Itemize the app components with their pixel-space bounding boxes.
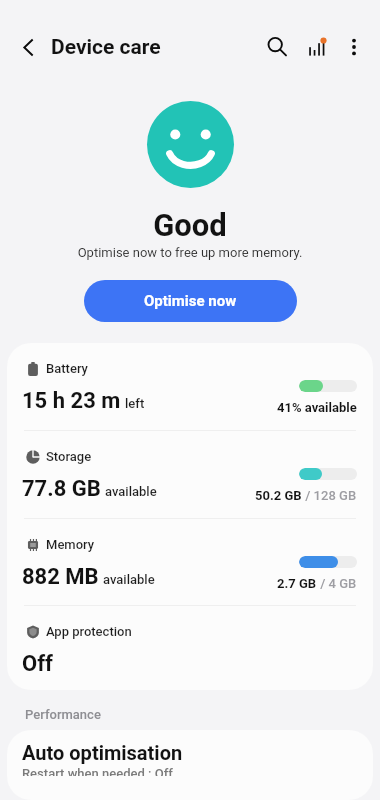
staticText: Battery	[46, 361, 88, 376]
button[interactable]: Storage	[7, 431, 373, 519]
staticText: / 128 GB	[302, 488, 357, 503]
staticText: Device care	[51, 35, 161, 60]
staticText: Auto optimisation	[22, 741, 183, 764]
staticText: Good	[0, 207, 380, 243]
button[interactable]: Search	[261, 31, 293, 63]
button[interactable]: Optimise now	[84, 280, 297, 322]
staticText: Restart when needed : Off	[22, 766, 173, 776]
staticText: Memory	[46, 537, 95, 552]
button[interactable]: Auto optimisation	[7, 730, 373, 800]
staticText: App protection	[46, 624, 132, 639]
button[interactable]: Back	[12, 31, 44, 63]
staticText: 15 h 23 m	[22, 388, 121, 414]
staticText: / 4 GB	[317, 576, 357, 591]
staticText: 50.2 GB	[255, 488, 302, 503]
staticText: 2.7 GB	[277, 576, 317, 591]
staticText: available	[103, 572, 155, 587]
button[interactable]: Memory	[7, 519, 373, 606]
staticText: 882 MB	[22, 564, 99, 590]
button[interactable]: More options	[338, 31, 370, 63]
staticText: Optimise now	[144, 292, 237, 310]
button[interactable]: Battery	[7, 343, 373, 431]
button[interactable]: App protection	[7, 606, 373, 690]
staticText: Storage	[46, 449, 92, 464]
staticText: Off	[22, 651, 53, 677]
staticText: Performance	[25, 707, 101, 722]
staticText: 41% available	[277, 400, 357, 415]
staticText: left	[125, 396, 145, 411]
staticText: available	[105, 484, 157, 499]
button[interactable]: Diagnostics	[301, 31, 333, 63]
staticText: 77.8 GB	[22, 476, 101, 502]
staticText: Optimise now to free up more memory.	[0, 245, 380, 260]
